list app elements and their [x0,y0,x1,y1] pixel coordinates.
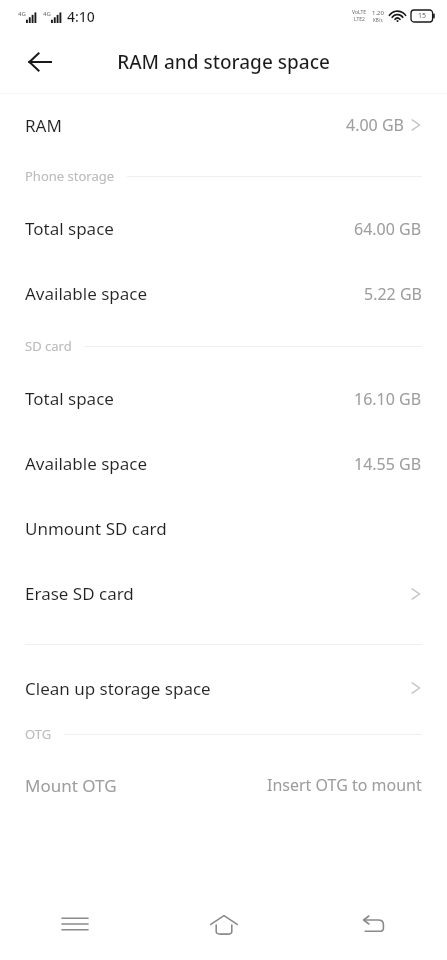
button[interactable]: Clean up storage space [0,662,447,714]
staticText: 14.55 GB [354,453,422,475]
staticText: 4.00 GB [346,114,404,136]
staticText: 4:10 [67,7,95,26]
staticText: RAM [25,114,62,137]
staticText: Available space [25,452,148,475]
button[interactable]: Back [298,888,447,960]
staticText: 1.20 [372,9,384,17]
staticText: KB/s [373,17,383,23]
button[interactable]: Unmount SD card [0,496,447,561]
staticText: Phone storage [25,167,115,185]
staticText: Unmount SD card [25,517,167,540]
staticText: VoLTE [352,9,367,16]
button[interactable]: Home [149,888,298,960]
staticText: 4G [18,10,26,18]
button[interactable]: Mount OTG [0,754,447,816]
button[interactable]: Recent apps [0,888,149,960]
button[interactable]: Total space [0,366,447,431]
button[interactable]: Total space [0,196,447,261]
staticText: LTE2 [354,16,365,23]
staticText: Insert OTG to mount [267,774,422,796]
staticText: Total space [25,387,114,410]
staticText: OTG [25,725,52,743]
button[interactable]: RAM [0,94,447,156]
button[interactable]: Back [15,37,65,87]
staticText: Erase SD card [25,582,134,605]
button[interactable]: Erase SD card [0,561,447,626]
staticText: 4G [43,10,51,18]
staticText: Clean up storage space [25,677,211,700]
staticText: SD card [25,337,72,355]
button[interactable]: Available space [0,261,447,326]
staticText: 5.22 GB [364,283,422,305]
staticText: 64.00 GB [354,218,422,240]
staticText: Mount OTG [25,774,117,797]
staticText: 15 [418,11,427,21]
staticText: RAM and storage space [117,49,330,75]
staticText: Available space [25,282,148,305]
staticText: 16.10 GB [354,388,422,410]
button[interactable]: Available space [0,431,447,496]
staticText: Total space [25,217,114,240]
